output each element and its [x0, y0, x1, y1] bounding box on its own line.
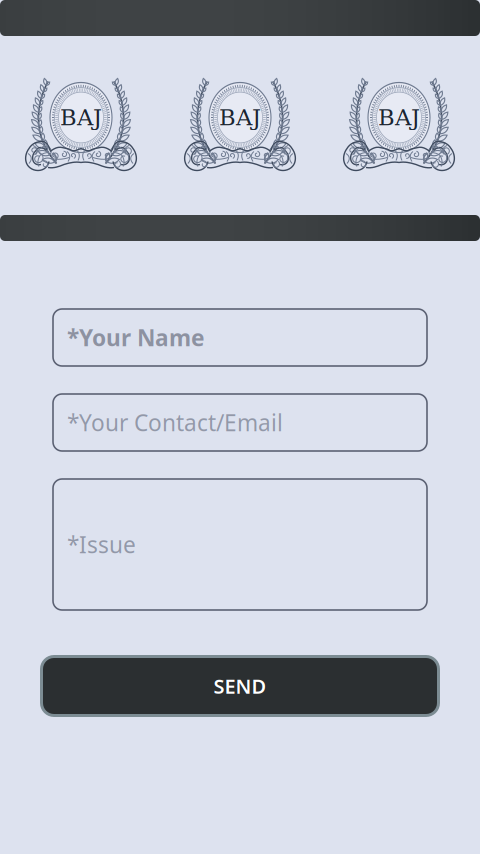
staticText: *Your Name — [67, 322, 205, 352]
staticText: BAJ — [378, 104, 420, 131]
staticText: *Your Contact/Email — [67, 407, 283, 437]
staticText: BAJ — [60, 104, 102, 131]
button[interactable]: *Issue — [53, 479, 427, 610]
staticText: BAJ — [219, 104, 261, 131]
button[interactable]: *Your Contact/Email — [53, 394, 427, 451]
staticText: SEND — [213, 673, 266, 699]
button[interactable]: SEND — [40, 655, 440, 717]
button[interactable]: *Your Name — [53, 309, 427, 366]
staticText: *Issue — [67, 529, 136, 559]
